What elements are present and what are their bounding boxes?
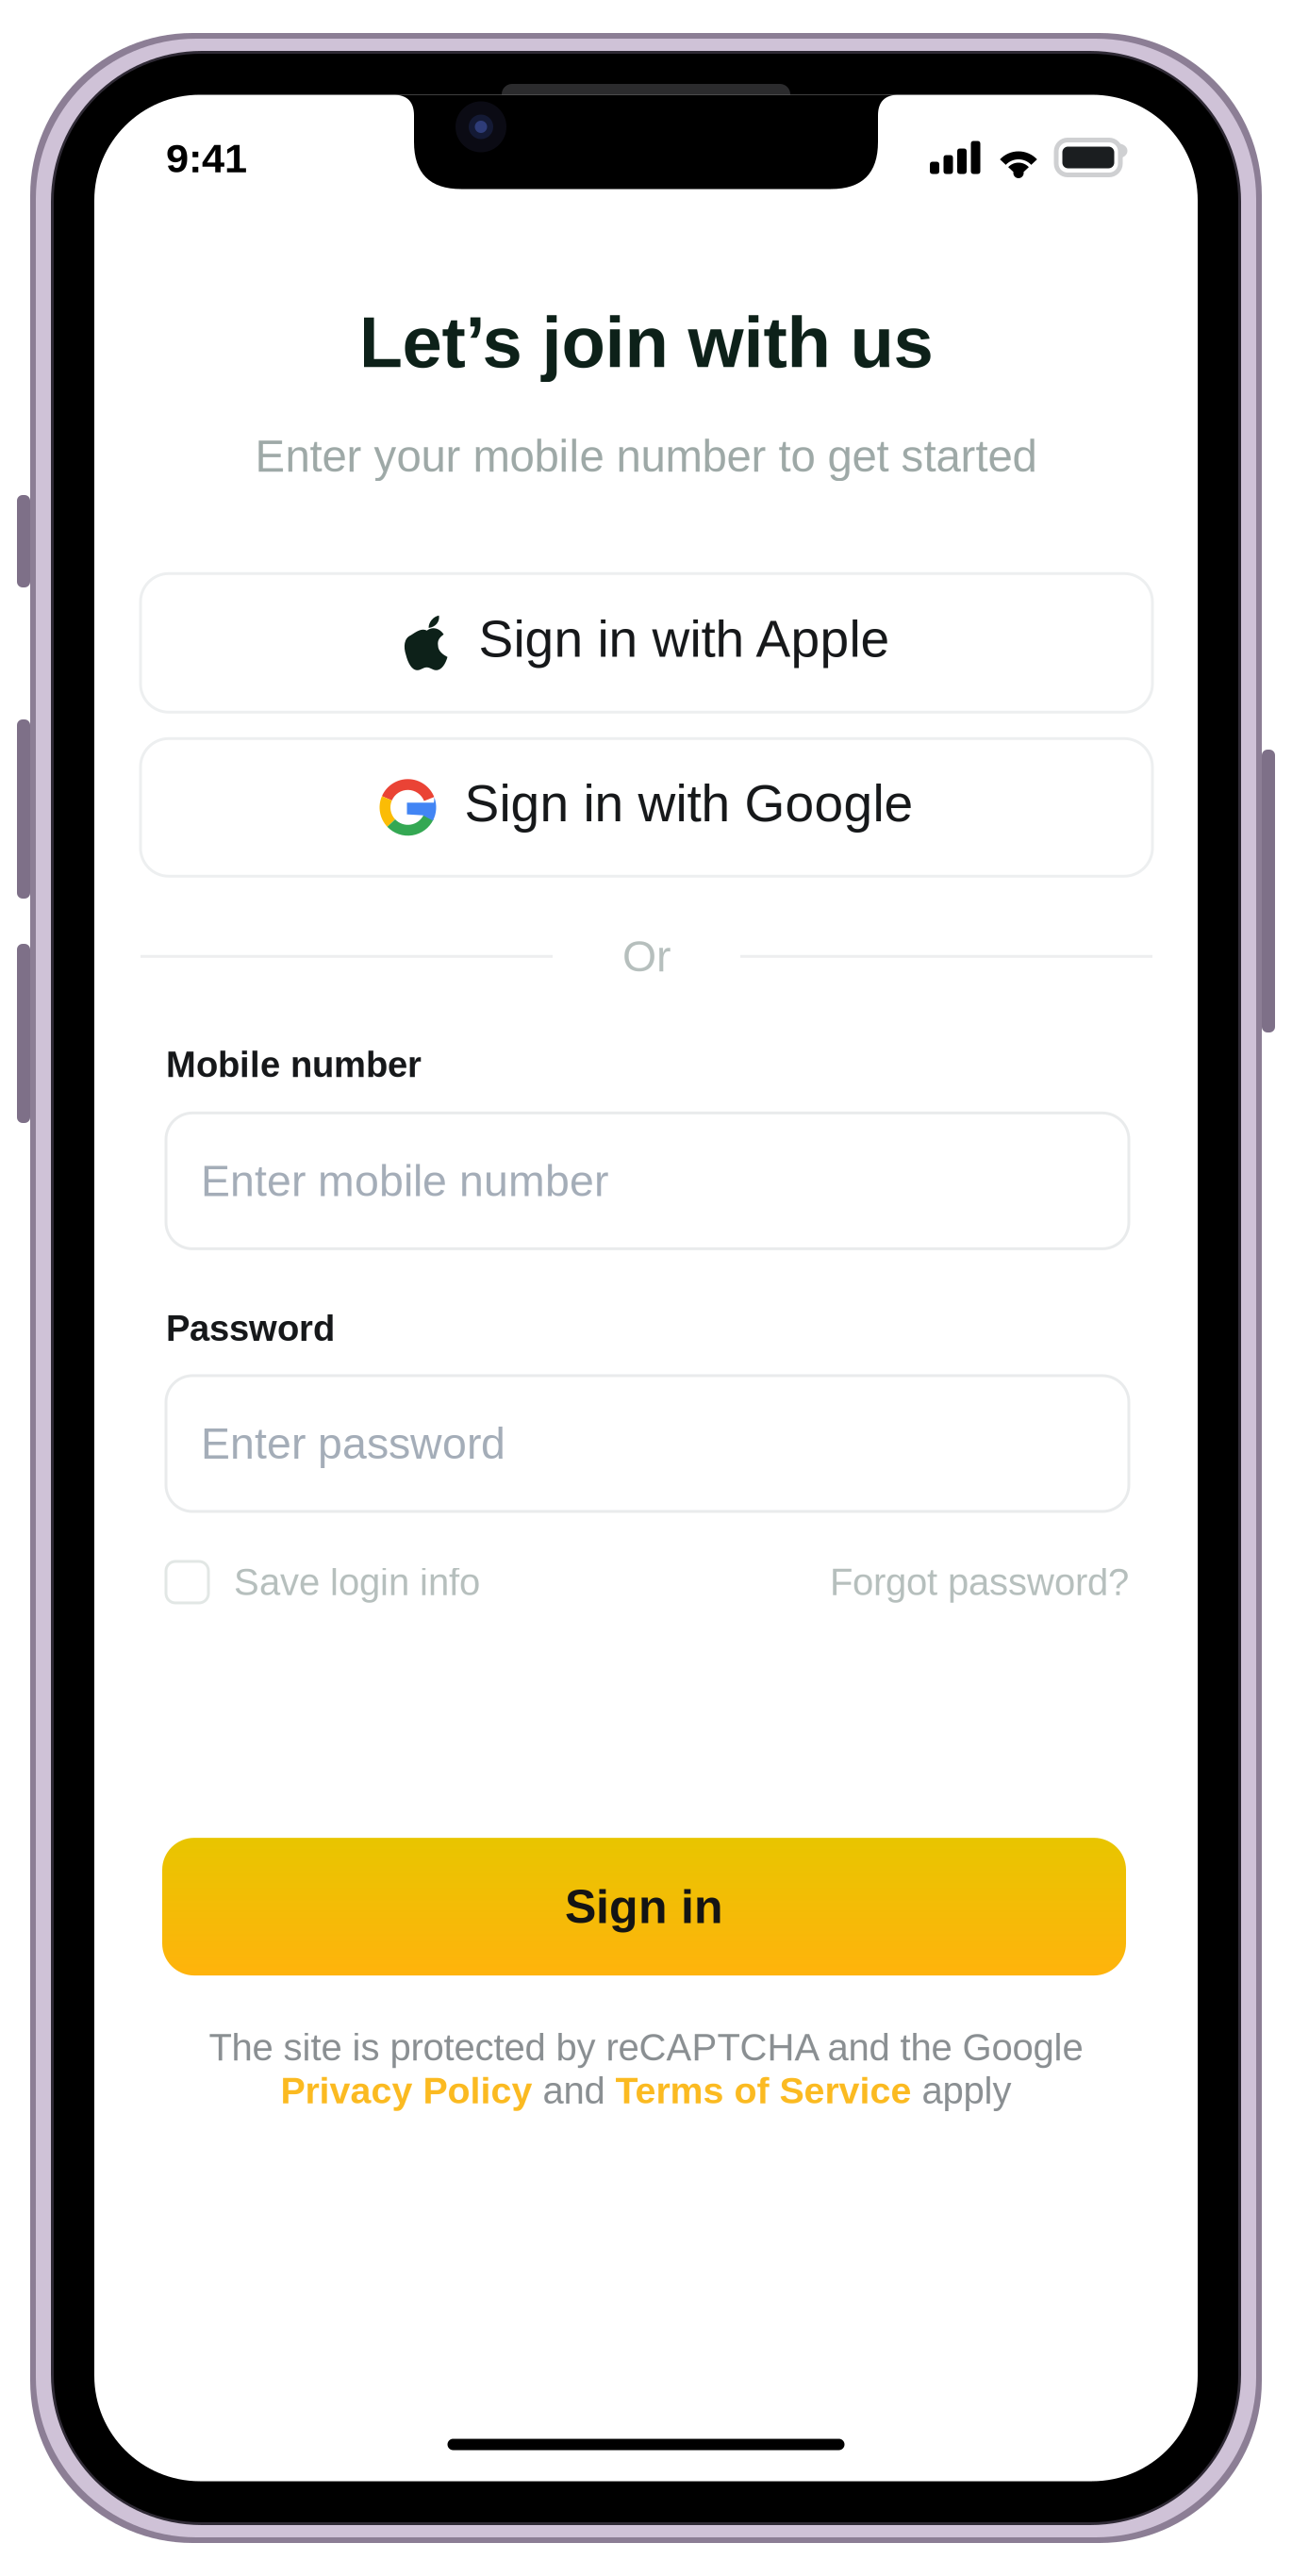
staticText: Enter password <box>201 1419 505 1468</box>
button[interactable]: Sign in with Google <box>141 739 1152 876</box>
staticText: 9:41 <box>166 135 247 181</box>
button[interactable]: Enter mobile number <box>166 1113 1129 1249</box>
staticText: Or <box>622 932 671 981</box>
staticText: Enter your mobile number to get started <box>255 431 1037 481</box>
staticText: Forgot password? <box>830 1561 1129 1603</box>
button[interactable]: Privacy Policy <box>281 2070 532 2111</box>
staticText: apply <box>911 2069 1011 2112</box>
staticText: Save login info <box>234 1561 480 1603</box>
staticText: The site is protected by reCAPTCHA and t… <box>209 2026 1083 2069</box>
staticText: Let’s join with us <box>359 302 933 382</box>
staticText: Sign in with Apple <box>479 610 890 668</box>
staticText: Enter mobile number <box>201 1156 608 1205</box>
staticText: Mobile number <box>166 1045 422 1085</box>
button[interactable]: Enter password <box>166 1376 1129 1511</box>
button[interactable]: Sign in <box>162 1838 1126 1975</box>
staticText: Privacy Policy <box>281 2070 532 2111</box>
button[interactable]: Save login info <box>166 1561 480 1603</box>
button[interactable]: Forgot password? <box>830 1561 1129 1603</box>
button[interactable]: Sign in with Apple <box>141 574 1152 712</box>
staticText: Sign in with Google <box>464 774 913 832</box>
button[interactable]: Terms of Service <box>615 2070 911 2111</box>
staticText: and <box>532 2069 615 2112</box>
staticText: Password <box>166 1308 335 1348</box>
staticText: Terms of Service <box>615 2070 911 2111</box>
staticText: Sign in <box>565 1880 723 1933</box>
